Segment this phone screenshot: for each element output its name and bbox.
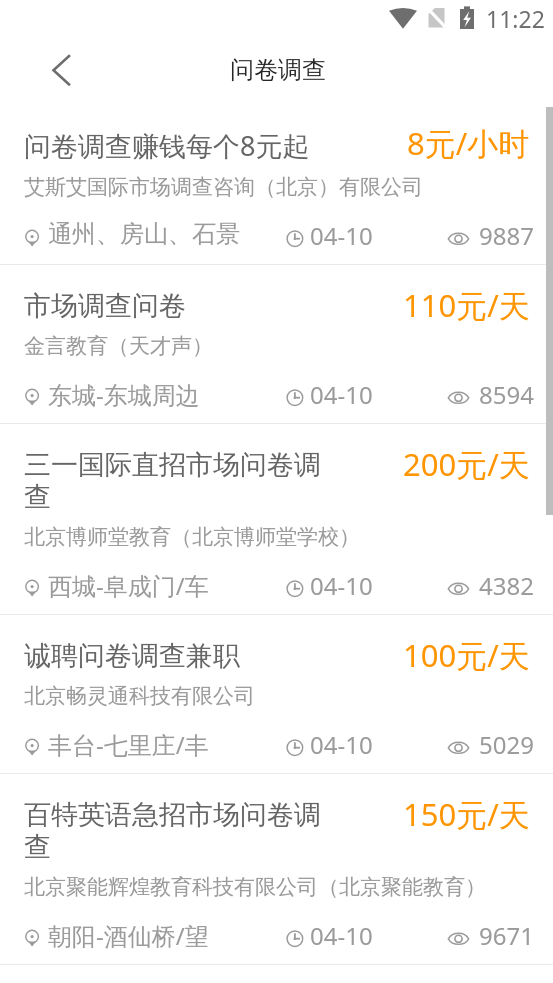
- staticText: 9671: [479, 919, 534, 952]
- staticText: 问卷调查: [230, 55, 326, 85]
- staticText: 朝阳-酒仙桥/望: [48, 919, 209, 952]
- staticText: 04-10: [310, 219, 373, 252]
- staticText: 4382: [479, 569, 534, 602]
- staticText: 5029: [479, 728, 534, 761]
- button[interactable]: 市场调查问卷: [0, 265, 553, 423]
- staticText: 东城-东城周边: [48, 378, 200, 411]
- button[interactable]: 诚聘问卷调查兼职: [0, 615, 553, 773]
- staticText: 诚聘问卷调查兼职: [24, 639, 334, 673]
- staticText: 8元/小时: [407, 122, 530, 164]
- staticText: 04-10: [310, 378, 373, 411]
- staticText: 北京博师堂教育（北京博师堂学校）: [24, 524, 360, 550]
- staticText: 丰台-七里庄/丰: [48, 728, 209, 761]
- staticText: 艾斯艾国际市场调查咨询（北京）有限公司: [24, 174, 423, 200]
- staticText: 04-10: [310, 569, 373, 602]
- button[interactable]: 百特英语急招市场问卷调查: [0, 774, 553, 964]
- staticText: 8594: [479, 378, 534, 411]
- staticText: 百特英语急招市场问卷调查: [24, 798, 334, 864]
- staticText: 西城-阜成门/车: [48, 569, 209, 602]
- staticText: 04-10: [310, 728, 373, 761]
- staticText: 通州、房山、石景: [48, 219, 240, 249]
- button[interactable]: 问卷调查赚钱每个8元起: [0, 103, 553, 264]
- staticText: 问卷调查赚钱每个8元起: [24, 127, 334, 164]
- button[interactable]: 三一国际直招市场问卷调查: [0, 424, 553, 614]
- staticText: 150元/天: [403, 793, 530, 835]
- staticText: 北京畅灵通科技有限公司: [24, 683, 255, 709]
- button[interactable]: Back: [32, 44, 90, 102]
- staticText: 200元/天: [403, 443, 530, 485]
- staticText: 110元/天: [403, 284, 530, 326]
- staticText: 北京聚能辉煌教育科技有限公司（北京聚能教育）: [24, 874, 486, 900]
- staticText: 100元/天: [403, 634, 530, 676]
- staticText: 三一国际直招市场问卷调查: [24, 448, 334, 514]
- staticText: 金言教育（天才声）: [24, 333, 213, 359]
- staticText: 市场调查问卷: [24, 289, 334, 323]
- staticText: 9887: [479, 219, 534, 252]
- staticText: 04-10: [310, 919, 373, 952]
- staticText: 11:22: [486, 3, 545, 34]
